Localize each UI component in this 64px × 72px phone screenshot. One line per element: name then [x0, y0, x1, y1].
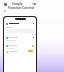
button[interactable]	[4, 44, 36, 47]
button[interactable]	[4, 22, 36, 25]
staticText: Parental Control	[8, 6, 35, 10]
other: App icon	[4, 3, 7, 6]
staticText: Simple	[12, 2, 23, 6]
button[interactable]	[4, 50, 36, 53]
button[interactable]	[4, 36, 36, 39]
